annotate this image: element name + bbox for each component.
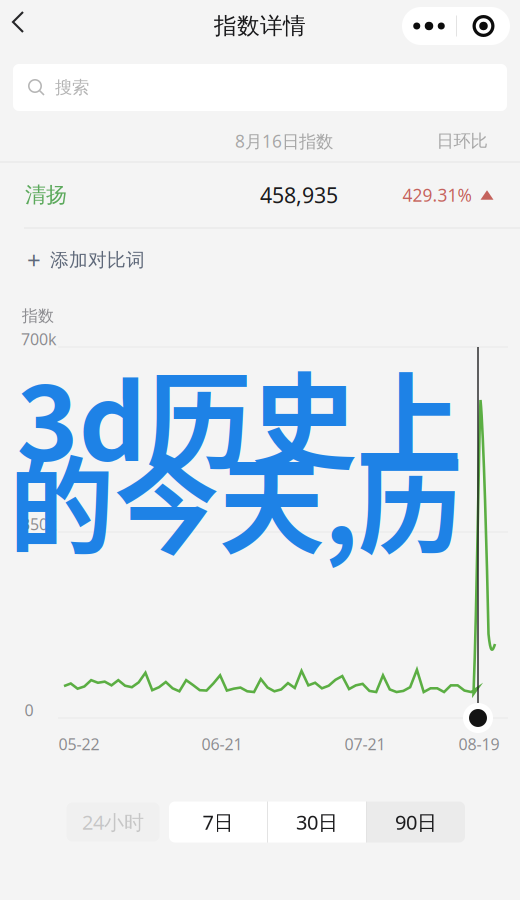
staticText: 的今天,历 [9,423,463,575]
staticText: 429.31% [402,183,471,206]
staticText: 清扬 [25,182,67,208]
staticText: 30日 [296,809,338,835]
staticText: 指数详情 [214,12,306,40]
staticText: + [27,244,41,276]
button[interactable]: 7日 [169,801,267,842]
button[interactable]: 90日 [367,801,465,842]
button[interactable]: + [0,229,520,291]
staticText: 08-19 [458,733,499,755]
button[interactable]: 搜索 [13,64,507,111]
staticText: 90日 [395,809,437,835]
staticText: 458,935 [260,181,338,209]
staticText: 日环比 [436,130,487,152]
staticText: 05-22 [58,733,99,755]
button[interactable]: 30日 [268,801,366,842]
button[interactable]: Back [6,5,50,49]
staticText: 350k [21,513,57,535]
staticText: 07-21 [344,733,385,755]
button[interactable]: More [402,7,456,45]
staticText: 06-21 [201,733,242,755]
staticText: 添加对比词 [50,248,145,271]
staticText: 指数 [22,306,54,326]
staticText: 24小时 [82,809,144,835]
staticText: 700k [21,328,57,350]
staticText: 8月16日指数 [235,129,333,152]
staticText: 搜索 [55,77,89,98]
staticText: 3d历史上 [16,339,461,491]
staticText: 7日 [202,809,233,835]
button[interactable]: 清扬 [0,162,520,228]
staticText: 0 [24,699,33,721]
button[interactable]: 24小时 [66,802,159,841]
button[interactable]: Close [457,7,510,45]
